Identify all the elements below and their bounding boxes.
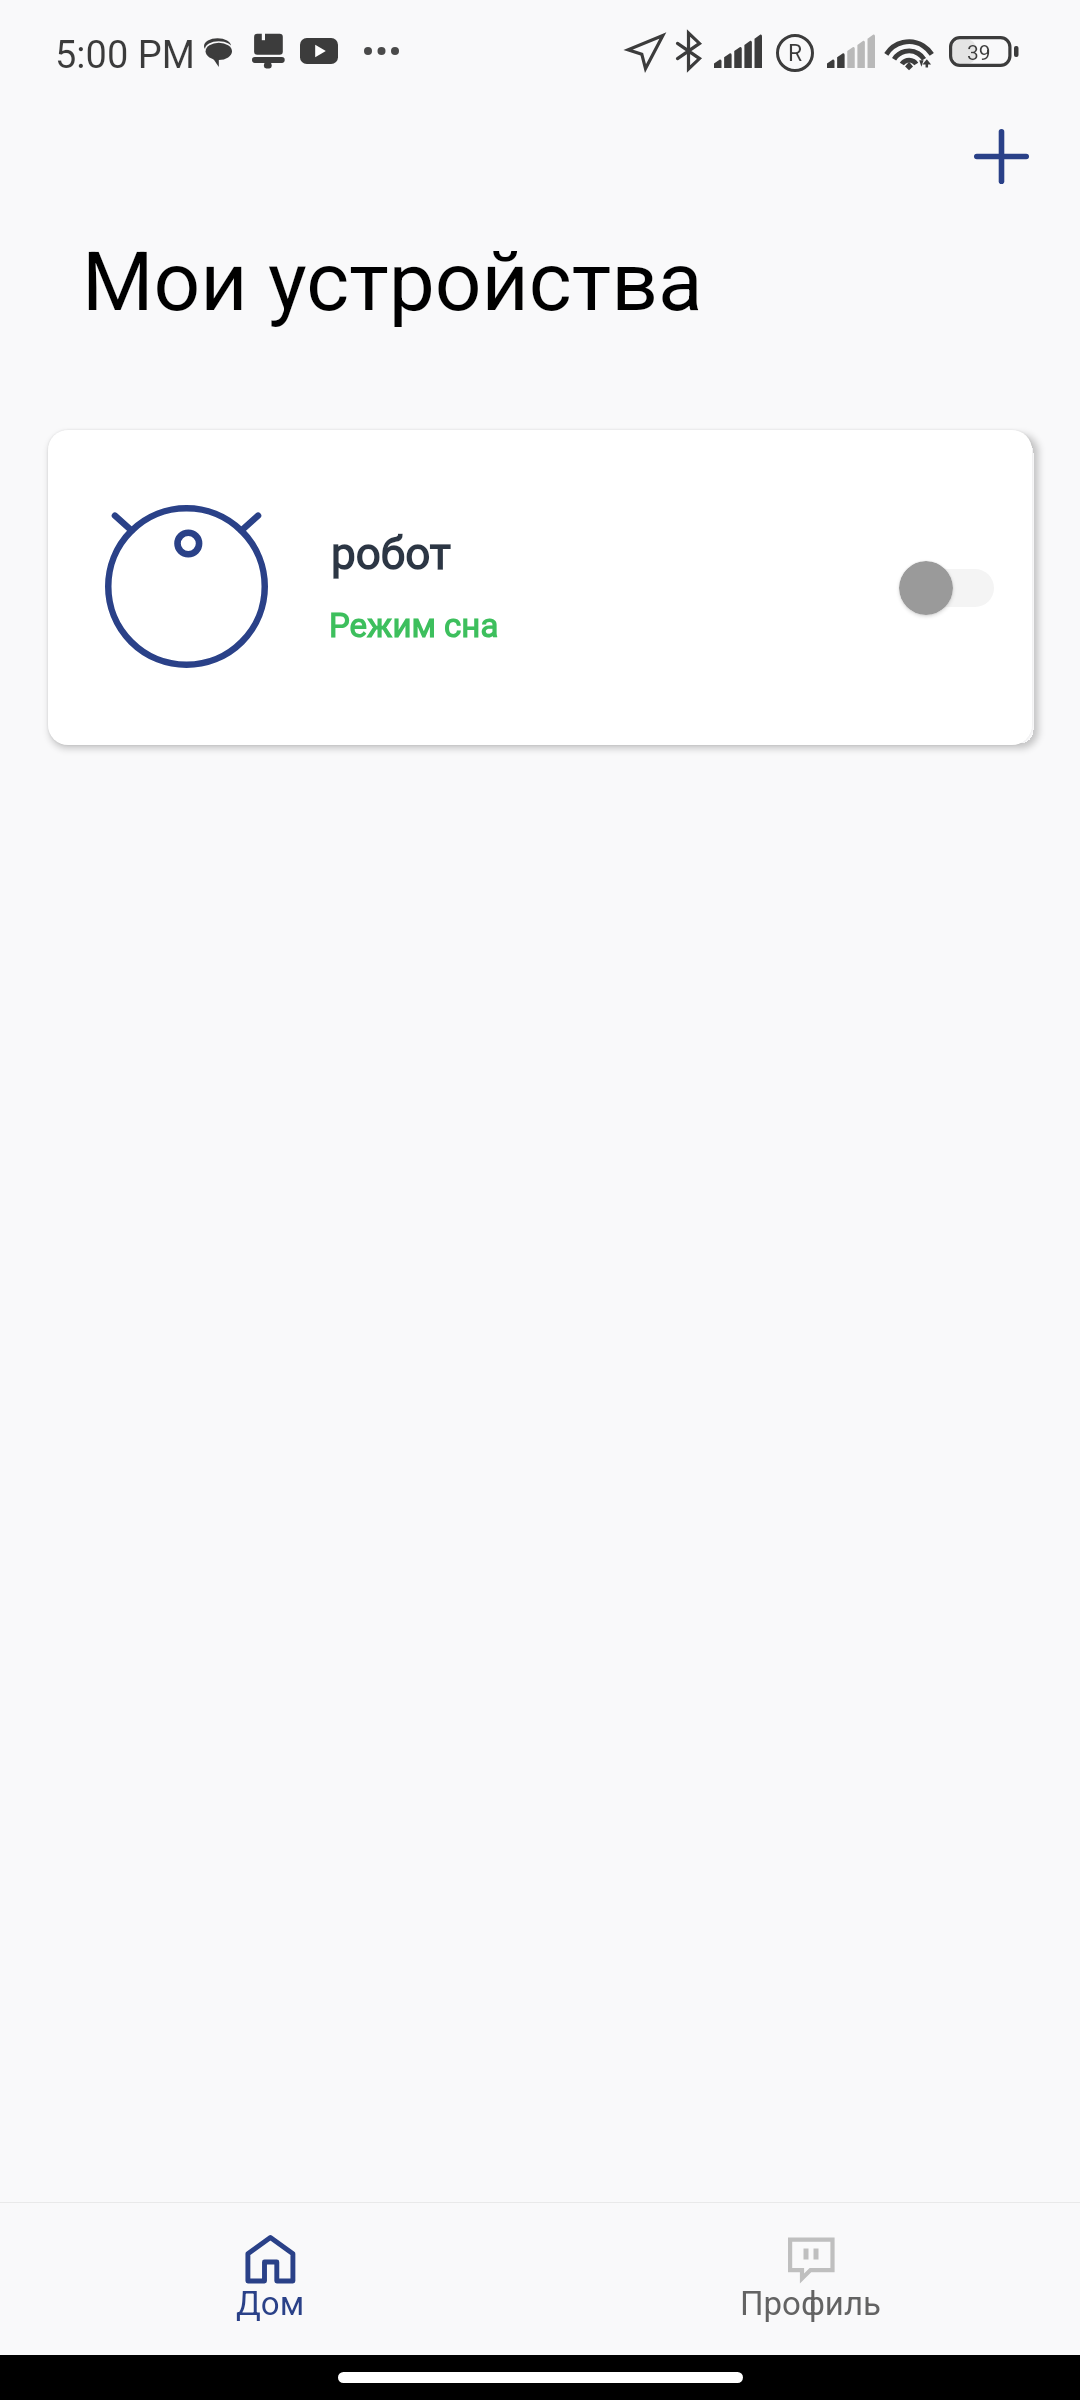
staticText: Профиль — [740, 2284, 881, 2323]
staticText: робот — [331, 528, 451, 580]
button[interactable]: робот — [48, 430, 1032, 745]
staticText: R — [788, 40, 803, 67]
staticText: Режим сна — [329, 606, 499, 645]
button[interactable]: Профиль — [540, 2202, 1080, 2355]
staticText: 5:00 PM — [55, 33, 195, 78]
staticText: Мои устройства — [82, 234, 703, 330]
button[interactable]: Add device — [946, 101, 1056, 211]
button[interactable]: Дом — [0, 2202, 540, 2355]
button[interactable]: Toggle sleep mode — [893, 555, 1005, 621]
staticText: Дом — [236, 2284, 305, 2323]
staticText: 39 — [967, 41, 991, 66]
